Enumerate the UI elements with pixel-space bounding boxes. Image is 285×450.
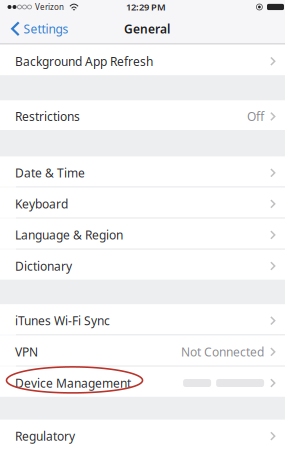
button[interactable]: Restrictions [0, 100, 285, 130]
button[interactable]: Device Management [0, 366, 285, 397]
button[interactable]: Regulatory [0, 420, 285, 450]
button[interactable]: VPN [0, 335, 285, 366]
staticText: Device Management [15, 375, 131, 391]
button[interactable]: Settings [0, 14, 74, 43]
staticText: Off [247, 108, 264, 124]
staticText: iTunes Wi-Fi Sync [15, 313, 110, 329]
staticText: 12:29 PM [126, 1, 166, 13]
staticText: Keyboard [15, 196, 68, 212]
button[interactable]: Date & Time [0, 156, 285, 187]
staticText: General [124, 21, 170, 37]
staticText: Dictionary [15, 258, 72, 274]
button[interactable]: Dictionary [0, 249, 285, 280]
staticText: Date & Time [15, 165, 85, 181]
staticText: Regulatory [15, 428, 75, 444]
button[interactable]: iTunes Wi-Fi Sync [0, 304, 285, 335]
staticText: Verizon [35, 2, 64, 12]
staticText: Settings [23, 21, 68, 37]
staticText: VPN [15, 344, 38, 360]
button[interactable]: Keyboard [0, 187, 285, 218]
button[interactable]: Background App Refresh [0, 44, 285, 75]
staticText: Background App Refresh [15, 53, 153, 69]
staticText: Restrictions [15, 108, 80, 124]
staticText: Not Connected [181, 344, 264, 360]
staticText: Language & Region [15, 227, 123, 243]
button[interactable]: Language & Region [0, 218, 285, 249]
